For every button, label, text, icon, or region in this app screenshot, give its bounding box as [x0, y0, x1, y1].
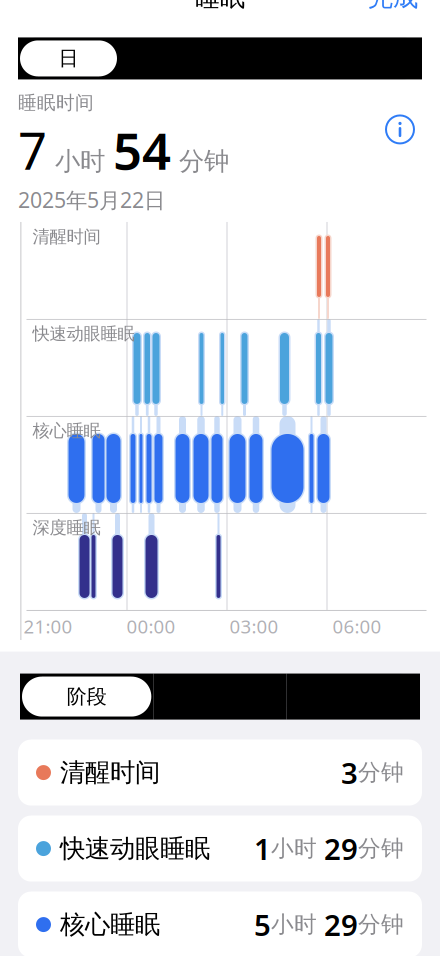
staticText: 分钟 — [358, 759, 404, 786]
staticText: 5 — [254, 905, 271, 944]
staticText: 54 — [113, 116, 171, 184]
staticText: 核心睡眠 — [60, 909, 160, 940]
staticText: 小时 — [47, 146, 113, 177]
staticText: 清醒时间 — [60, 757, 160, 788]
button[interactable]: 6个月 — [321, 37, 422, 79]
button[interactable]: 比较 — [287, 674, 420, 720]
staticText: 阶段 — [67, 684, 107, 709]
button[interactable]: 日 — [18, 37, 119, 79]
staticText: 00:00 — [126, 614, 175, 639]
staticText: 分钟 — [358, 835, 404, 862]
button[interactable]: 快速动眼睡眠 — [18, 816, 422, 882]
staticText: 小时 — [271, 911, 324, 938]
staticText: 29 — [324, 829, 358, 868]
button[interactable]: 月 — [220, 37, 321, 79]
staticText: 完成 — [368, 0, 418, 13]
staticText: 睡眠时间 — [18, 91, 94, 114]
staticText: 7 — [18, 116, 47, 184]
staticText: 清醒时间 — [32, 226, 100, 247]
staticText: 快速动眼睡眠 — [32, 323, 134, 344]
staticText: 21:00 — [23, 614, 72, 639]
staticText: 2025年5月22日 — [18, 186, 165, 214]
staticText: 29 — [324, 905, 358, 944]
button[interactable]: 周 — [119, 37, 220, 79]
staticText: 分钟 — [171, 146, 229, 177]
staticText: 1 — [254, 829, 271, 868]
button[interactable]: 关于睡眠时间 — [378, 107, 422, 151]
staticText: 03:00 — [229, 614, 278, 639]
button[interactable]: 核心睡眠 — [18, 892, 422, 956]
staticText: 06:00 — [332, 614, 381, 639]
staticText: 日 — [58, 46, 78, 71]
button[interactable]: 清醒时间 — [18, 740, 422, 806]
staticText: 3 — [341, 753, 358, 792]
button[interactable]: 完成 — [350, 0, 436, 21]
staticText: 小时 — [271, 835, 324, 862]
staticText: 快速动眼睡眠 — [60, 833, 210, 864]
button[interactable]: 总量 — [153, 674, 287, 720]
button[interactable]: 阶段 — [20, 674, 153, 720]
staticText: 深度睡眠 — [32, 517, 100, 538]
staticText: 分钟 — [358, 911, 404, 938]
staticText: 核心睡眠 — [32, 420, 100, 441]
staticText: 睡眠 — [195, 0, 245, 13]
